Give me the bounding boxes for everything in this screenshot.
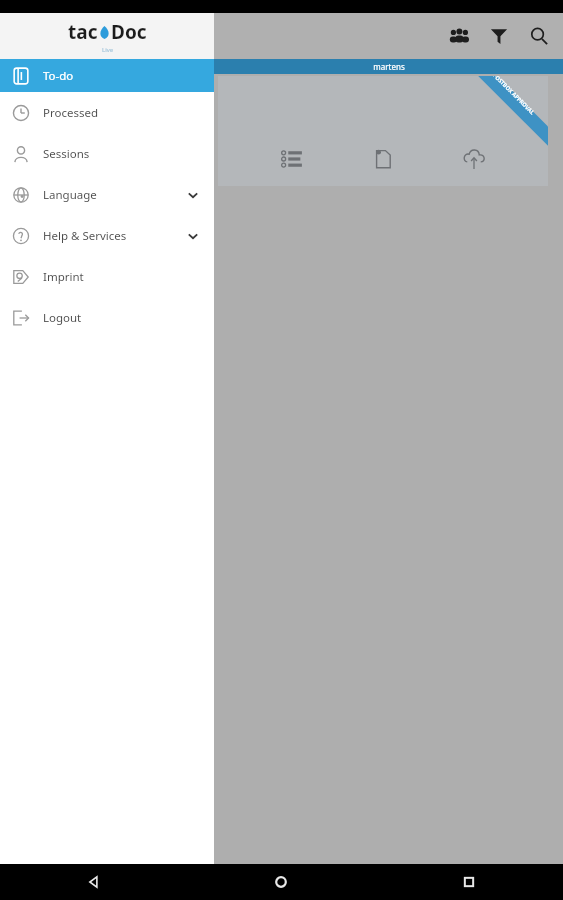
staticText: Doc [111,19,147,45]
staticText: To-do [43,68,74,84]
staticText: Imprint [43,269,84,285]
staticText: Processed [43,105,99,121]
button[interactable]: Sessions [0,133,214,174]
button[interactable]: Upload [457,142,491,176]
button[interactable]: Recents [375,864,563,900]
button[interactable]: Back [0,864,187,900]
button[interactable]: Imprint [0,256,214,297]
button[interactable]: Help & Services [0,215,214,256]
button[interactable]: Contacts [439,16,479,56]
button[interactable]: Details list [275,142,309,176]
staticText: Language [43,187,97,203]
button[interactable]: Language [0,174,214,215]
button[interactable]: Processed [0,92,214,133]
staticText: tac [68,19,98,45]
button[interactable]: Logout [0,297,214,338]
button[interactable]: Home [187,864,375,900]
button[interactable]: Filter [479,16,519,56]
button[interactable]: To-do [0,59,214,92]
staticText: Live [102,46,114,54]
staticText: Logout [43,310,82,326]
staticText: Sessions [43,146,90,162]
staticText: POSTBOX APPROVAL [492,76,536,116]
button[interactable]: Search [519,16,559,56]
button[interactable]: Document [366,142,400,176]
button[interactable]: POSTBOX APPROVAL [218,76,548,186]
staticText: Help & Services [43,228,127,244]
staticText: martens [373,61,405,72]
